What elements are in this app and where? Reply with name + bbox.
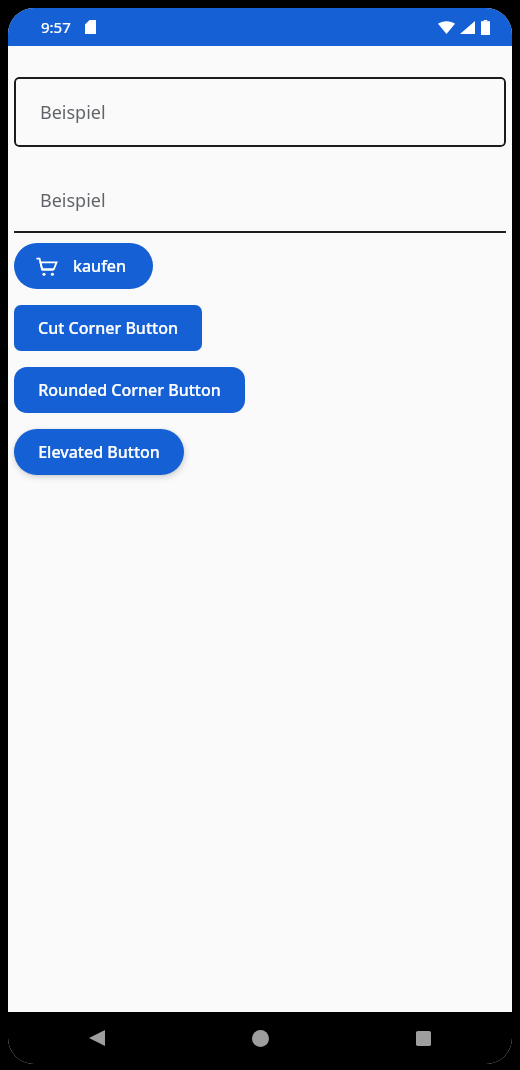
- staticText: Elevated Button: [38, 441, 160, 463]
- button[interactable]: Beispiel: [14, 77, 506, 147]
- button[interactable]: Cut Corner Button: [14, 305, 202, 351]
- button[interactable]: Elevated Button: [14, 429, 184, 475]
- button[interactable]: Recent apps: [400, 1015, 446, 1061]
- button[interactable]: Beispiel: [14, 169, 506, 233]
- staticText: kaufen: [73, 255, 127, 277]
- button[interactable]: Home: [237, 1015, 283, 1061]
- staticText: Rounded Corner Button: [38, 379, 221, 401]
- staticText: Beispiel: [40, 100, 106, 125]
- button[interactable]: Rounded Corner Button: [14, 367, 245, 413]
- button[interactable]: Back: [74, 1015, 120, 1061]
- staticText: Beispiel: [40, 188, 106, 213]
- button[interactable]: kaufen: [14, 243, 153, 289]
- staticText: Cut Corner Button: [38, 317, 178, 339]
- staticText: 9:57: [41, 17, 71, 37]
